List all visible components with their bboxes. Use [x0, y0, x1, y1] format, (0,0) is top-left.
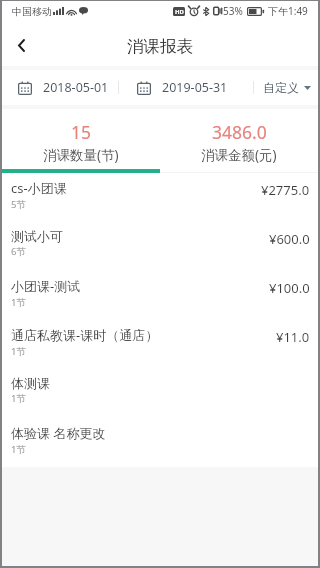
- staticText: 1节: [11, 392, 26, 405]
- staticText: cs-小团课: [11, 179, 67, 197]
- staticText: 1节: [11, 296, 26, 309]
- staticText: 体测课: [11, 375, 50, 391]
- button[interactable]: cs-小团课: [2, 173, 318, 222]
- button[interactable]: 2018-05-01: [18, 70, 109, 105]
- staticText: ¥100.0: [269, 279, 310, 297]
- button[interactable]: 测试小可: [2, 222, 318, 271]
- staticText: 消课报表: [127, 36, 193, 57]
- button[interactable]: 15: [2, 109, 160, 173]
- staticText: 53%: [223, 4, 243, 18]
- staticText: 消课金额(元): [201, 146, 277, 164]
- staticText: 6节: [11, 245, 26, 258]
- staticText: ¥2775.0: [261, 181, 310, 199]
- button[interactable]: 自定义: [263, 70, 311, 105]
- staticText: HD: [175, 8, 184, 16]
- staticText: ¥600.0: [269, 230, 310, 248]
- staticText: 15: [71, 120, 92, 144]
- button[interactable]: 通店私教课-课时（通店）: [2, 320, 318, 369]
- staticText: 自定义: [263, 80, 299, 95]
- staticText: 2018-05-01: [43, 79, 109, 96]
- button[interactable]: 体测课: [2, 369, 318, 418]
- staticText: 3486.0: [212, 120, 267, 144]
- staticText: 消课数量(节): [43, 146, 119, 164]
- staticText: 1节: [11, 345, 26, 358]
- button[interactable]: Back: [2, 21, 44, 66]
- staticText: 通店私教课-课时（通店）: [11, 326, 159, 344]
- staticText: 2019-05-31: [162, 79, 228, 96]
- staticText: 5节: [11, 198, 26, 211]
- staticText: ¥11.0: [276, 328, 310, 346]
- staticText: 中国移动: [12, 5, 52, 18]
- button[interactable]: 体验课 名称更改: [2, 418, 318, 467]
- staticText: 1节: [11, 443, 26, 456]
- button[interactable]: 3486.0: [160, 109, 318, 173]
- staticText: 体验课 名称更改: [11, 424, 106, 442]
- staticText: 测试小可: [11, 228, 63, 244]
- button[interactable]: 小团课-测试: [2, 271, 318, 320]
- staticText: 小团课-测试: [11, 277, 81, 295]
- button[interactable]: 2019-05-31: [137, 70, 228, 105]
- staticText: 下午1:49: [268, 4, 308, 18]
